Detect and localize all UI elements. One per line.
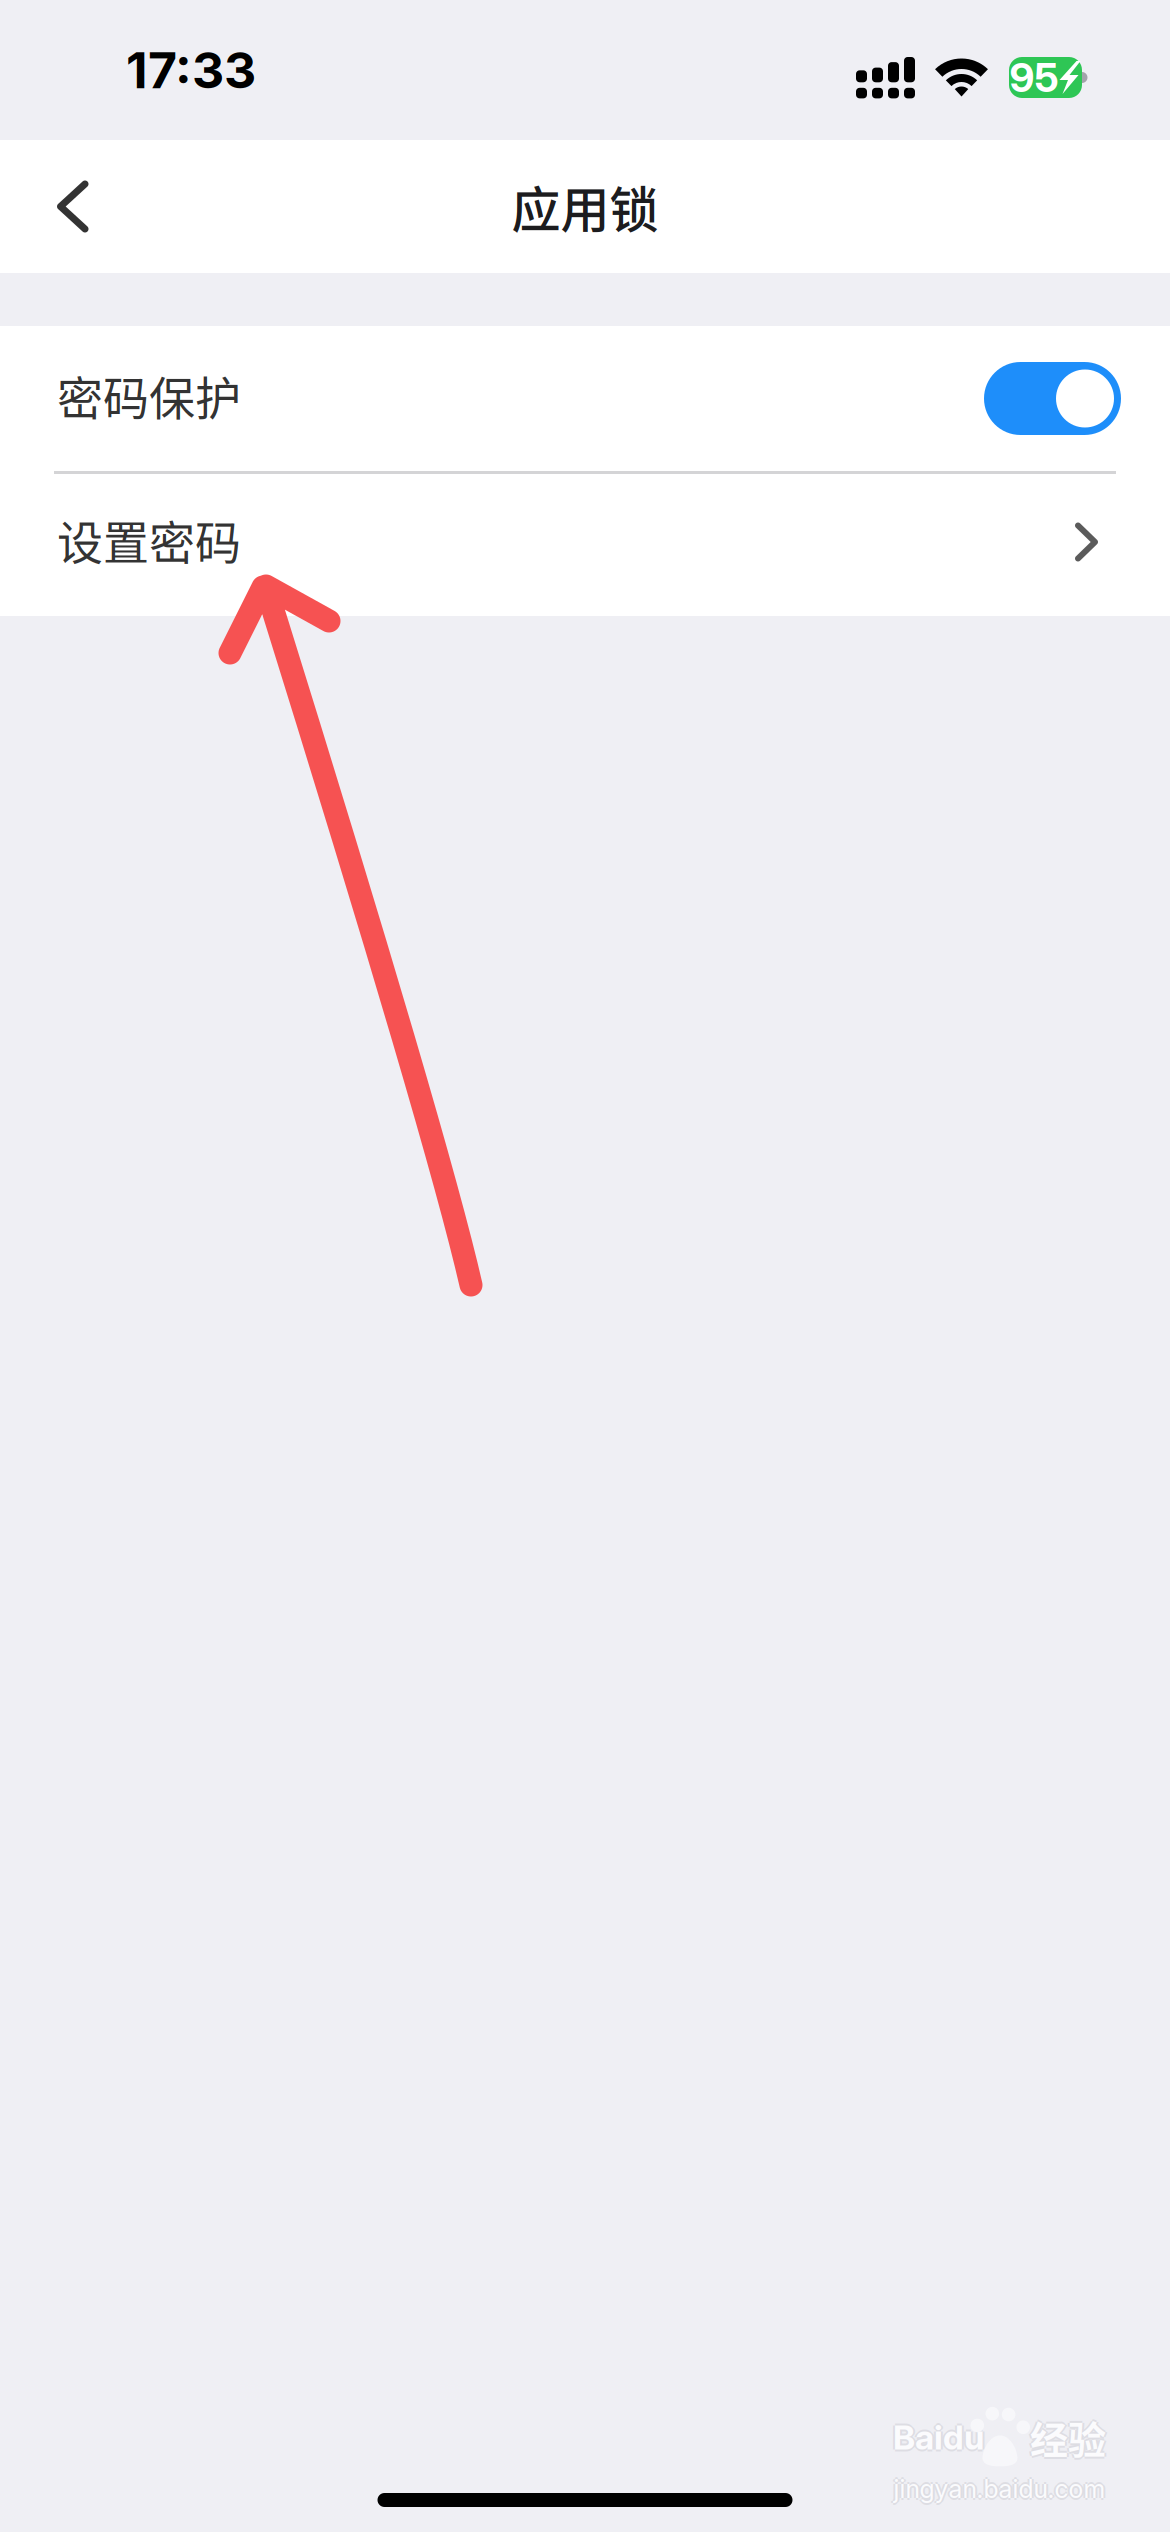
staticText: Baidu: [893, 2417, 984, 2458]
staticText: jingyan.baidu.com: [893, 2472, 1105, 2502]
staticText: jingyan.baidu.com: [893, 2476, 1105, 2506]
staticText: 经验: [1032, 2410, 1108, 2465]
staticText: jingyan.baidu.com: [895, 2474, 1107, 2504]
staticText: jingyan.baidu.com: [891, 2474, 1103, 2504]
button[interactable]: 密码保护开关: [984, 362, 1121, 435]
staticText: 设置密码: [57, 506, 241, 573]
staticText: 95: [1009, 53, 1058, 102]
staticText: Baidu: [891, 2417, 982, 2458]
staticText: jingyan.baidu.com: [893, 2474, 1105, 2504]
staticText: 应用锁: [511, 171, 658, 242]
button[interactable]: 返回: [0, 140, 150, 273]
staticText: 经验: [1030, 2410, 1106, 2465]
staticText: Baidu: [895, 2417, 986, 2458]
staticText: 经验: [1028, 2410, 1104, 2465]
staticText: Baidu: [893, 2419, 984, 2460]
staticText: 密码保护: [57, 362, 241, 428]
staticText: Baidu: [893, 2415, 984, 2456]
button[interactable]: 设置密码: [0, 474, 1170, 616]
staticText: 经验: [1030, 2412, 1106, 2467]
staticText: 经验: [1030, 2408, 1106, 2463]
staticText: 17:33: [126, 40, 256, 100]
